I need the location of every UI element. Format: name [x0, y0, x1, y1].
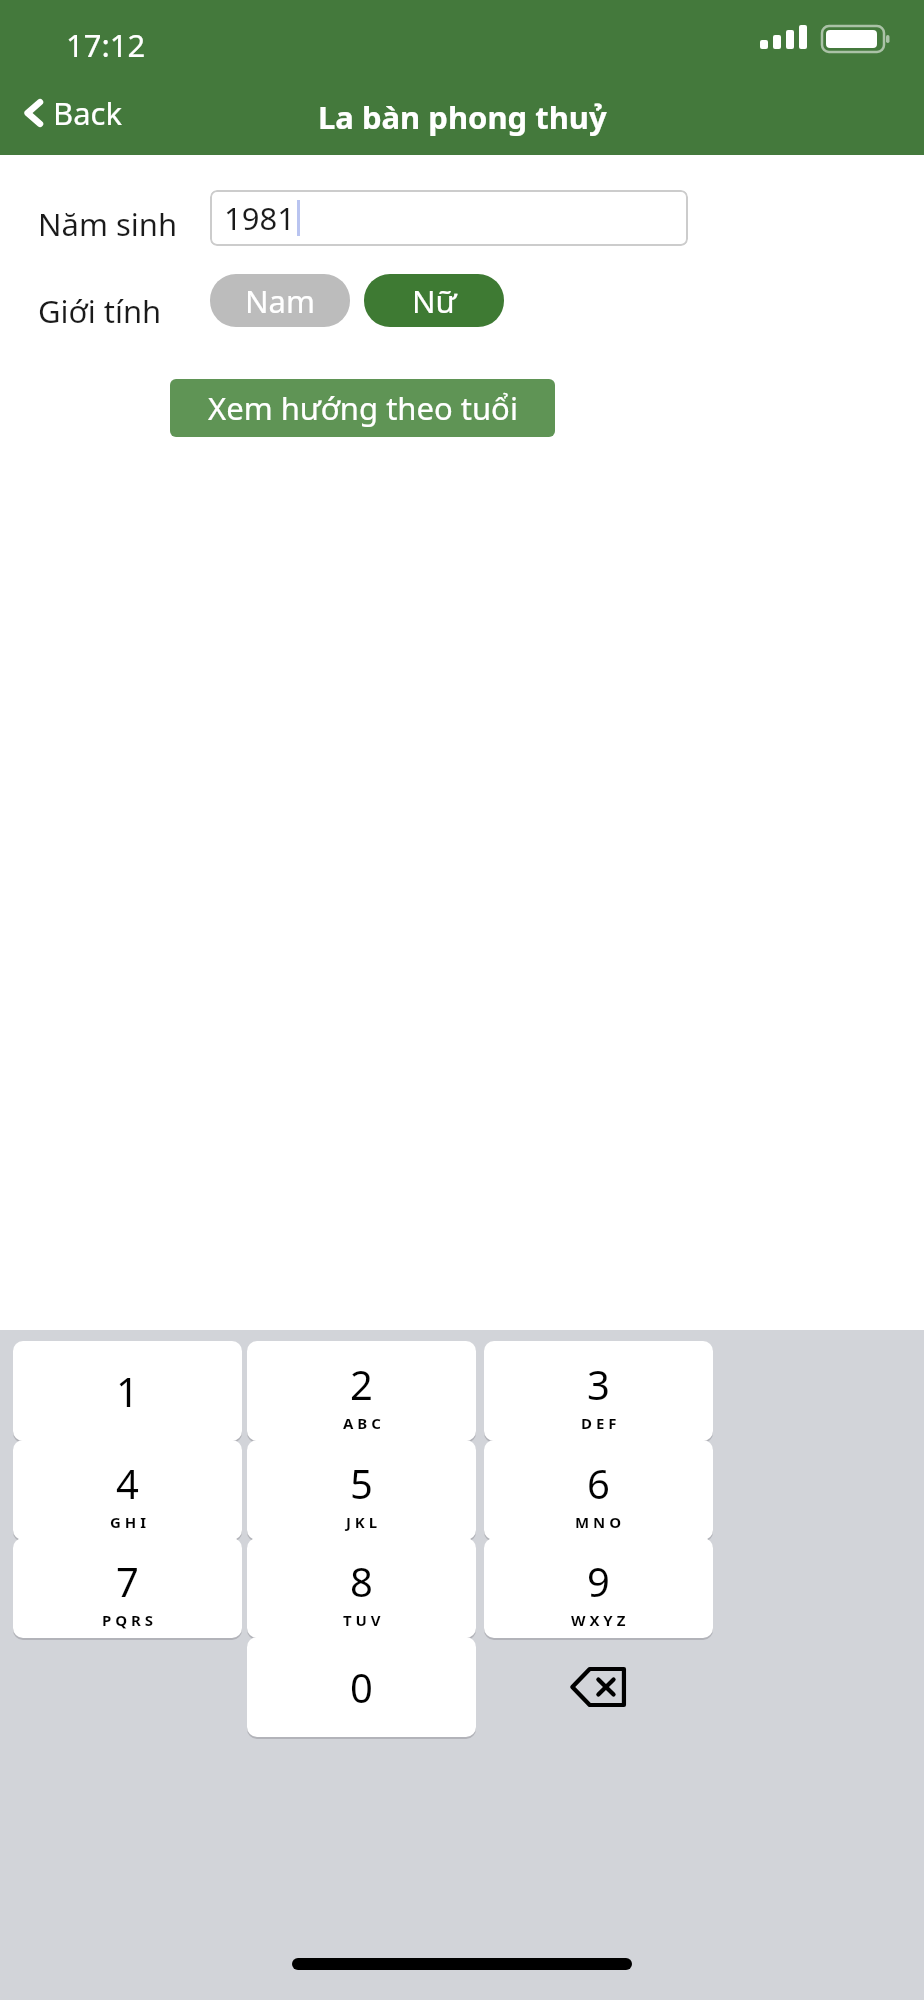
staticText: 1 [116, 1364, 139, 1418]
staticText: J K L [346, 1512, 378, 1532]
button[interactable]: Backspace [484, 1637, 713, 1737]
staticText: 5 [350, 1456, 373, 1510]
staticText: Xem hướng theo tuổi [208, 387, 518, 429]
staticText: 0 [350, 1660, 373, 1714]
staticText: Giới tính [38, 290, 162, 332]
button[interactable]: 1 [13, 1341, 242, 1441]
staticText: T U V [343, 1610, 381, 1630]
staticText: 2 [350, 1357, 373, 1411]
staticText: 4 [116, 1456, 139, 1510]
button[interactable]: 9 [484, 1538, 713, 1638]
staticText: La bàn phong thuỷ [318, 96, 607, 138]
button[interactable]: 0 [247, 1637, 476, 1737]
staticText: A B C [343, 1413, 381, 1433]
button[interactable]: 4 [13, 1440, 242, 1540]
staticText: P Q R S [102, 1610, 153, 1630]
staticText: 9 [587, 1554, 610, 1608]
staticText: Năm sinh [38, 203, 178, 245]
button[interactable]: 5 [247, 1440, 476, 1540]
button[interactable]: Nam [210, 274, 350, 327]
staticText: M N O [575, 1512, 622, 1532]
button[interactable]: 7 [13, 1538, 242, 1638]
button[interactable]: Back [18, 88, 128, 138]
staticText: 3 [587, 1357, 610, 1411]
staticText: 8 [350, 1554, 373, 1608]
staticText: G H I [110, 1512, 146, 1532]
staticText: Back [53, 92, 122, 134]
button[interactable]: Xem hướng theo tuổi [170, 379, 555, 437]
button[interactable]: 2 [247, 1341, 476, 1441]
button[interactable]: 1981 [210, 190, 688, 246]
staticText: W X Y Z [571, 1610, 626, 1630]
button[interactable]: 8 [247, 1538, 476, 1638]
staticText: D E F [581, 1413, 617, 1433]
staticText: Nam [245, 280, 315, 322]
button[interactable]: Nữ [364, 274, 504, 327]
staticText: Nữ [412, 280, 457, 322]
button[interactable]: 3 [484, 1341, 713, 1441]
button[interactable]: 6 [484, 1440, 713, 1540]
staticText: 7 [116, 1554, 139, 1608]
staticText: 1981 [224, 197, 295, 239]
staticText: 6 [587, 1456, 610, 1510]
staticText: 17:12 [66, 24, 146, 66]
